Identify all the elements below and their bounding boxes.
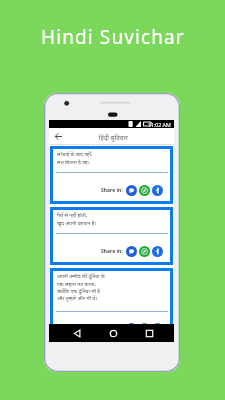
button[interactable]: Share on Facebook [152, 246, 163, 257]
button[interactable]: Share on Messenger [126, 246, 137, 257]
button[interactable]: Back [72, 328, 83, 339]
staticText: Share in: [101, 187, 123, 194]
staticText: अपनी उम्मीद की दुनिया के एक सहारा मत करन… [57, 273, 105, 301]
button[interactable]: Share on Messenger [126, 185, 137, 196]
button[interactable]: Share on Messenger [126, 323, 137, 334]
button[interactable]: अपनी उम्मीद की दुनिया के एक सहारा मत करन… [53, 271, 170, 339]
button[interactable]: गैरों से नहीं होती, खुद अपनी पहचान है। [53, 210, 170, 262]
button[interactable]: Share on Facebook [152, 185, 163, 196]
button[interactable]: Home [108, 328, 119, 339]
staticText: हिंदी सुविचार [99, 133, 128, 141]
button[interactable]: Share on WhatsApp [139, 246, 150, 257]
button[interactable]: Share on Facebook [152, 323, 163, 334]
staticText: गैरों से नहीं होती, खुद अपनी पहचान है। [57, 212, 97, 226]
staticText: Hindi Suvichar [41, 24, 185, 50]
staticText: Share in: [101, 248, 123, 255]
button[interactable]: सच्चाई के बाद नहीं, सच बोलना है वह। [53, 149, 170, 201]
button[interactable]: Share on WhatsApp [139, 185, 150, 196]
button[interactable]: Back [53, 131, 64, 142]
staticText: Share in: [101, 325, 123, 332]
staticText: 11:02 AM [148, 121, 171, 128]
button[interactable]: Share on WhatsApp [139, 323, 150, 334]
button[interactable]: Recent apps [144, 328, 155, 339]
staticText: सच्चाई के बाद नहीं, सच बोलना है वह। [57, 151, 93, 165]
